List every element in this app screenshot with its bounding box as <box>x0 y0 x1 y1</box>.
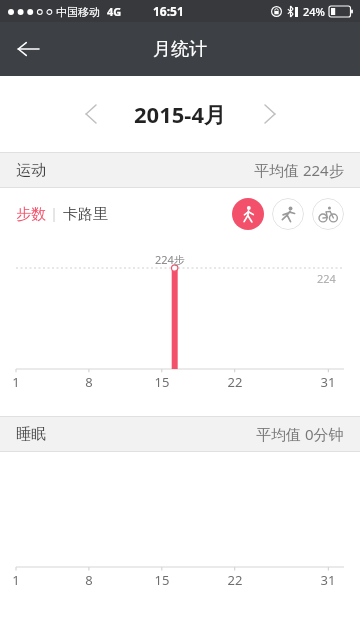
staticText: 224 <box>317 271 336 286</box>
staticText: 1 <box>4 571 28 589</box>
staticText: 31 <box>316 373 340 391</box>
button[interactable]: 步数 <box>16 205 46 224</box>
staticText: 224步 <box>155 252 185 267</box>
staticText: 4G <box>107 4 122 19</box>
staticText: 平均值 0分钟 <box>256 424 344 444</box>
button[interactable]: Back <box>6 27 50 71</box>
button[interactable]: Next month <box>250 94 290 134</box>
staticText: 22 <box>223 373 247 391</box>
staticText: 16:51 <box>153 3 184 19</box>
staticText: 运动 <box>16 161 46 180</box>
staticText: 22 <box>223 571 247 589</box>
staticText: 15 <box>150 571 174 589</box>
staticText: 中国移动 <box>56 5 100 19</box>
staticText: 1 <box>4 373 28 391</box>
button[interactable]: Cycling <box>312 198 344 230</box>
staticText: 睡眠 <box>16 425 46 444</box>
staticText: 24% <box>303 4 325 19</box>
staticText: 2015-4月 <box>134 99 226 129</box>
staticText: 平均值 224步 <box>254 160 344 180</box>
button[interactable]: Running <box>272 198 304 230</box>
button[interactable]: 卡路里 <box>63 205 108 224</box>
staticText: 步数 <box>16 205 46 224</box>
staticText: 月统计 <box>153 38 207 61</box>
staticText: 8 <box>77 571 101 589</box>
button[interactable]: Walking <box>232 198 264 230</box>
button[interactable]: Previous month <box>70 94 110 134</box>
staticText: 31 <box>316 571 340 589</box>
staticText: 15 <box>150 373 174 391</box>
staticText: 卡路里 <box>63 205 108 224</box>
staticText: 8 <box>77 373 101 391</box>
